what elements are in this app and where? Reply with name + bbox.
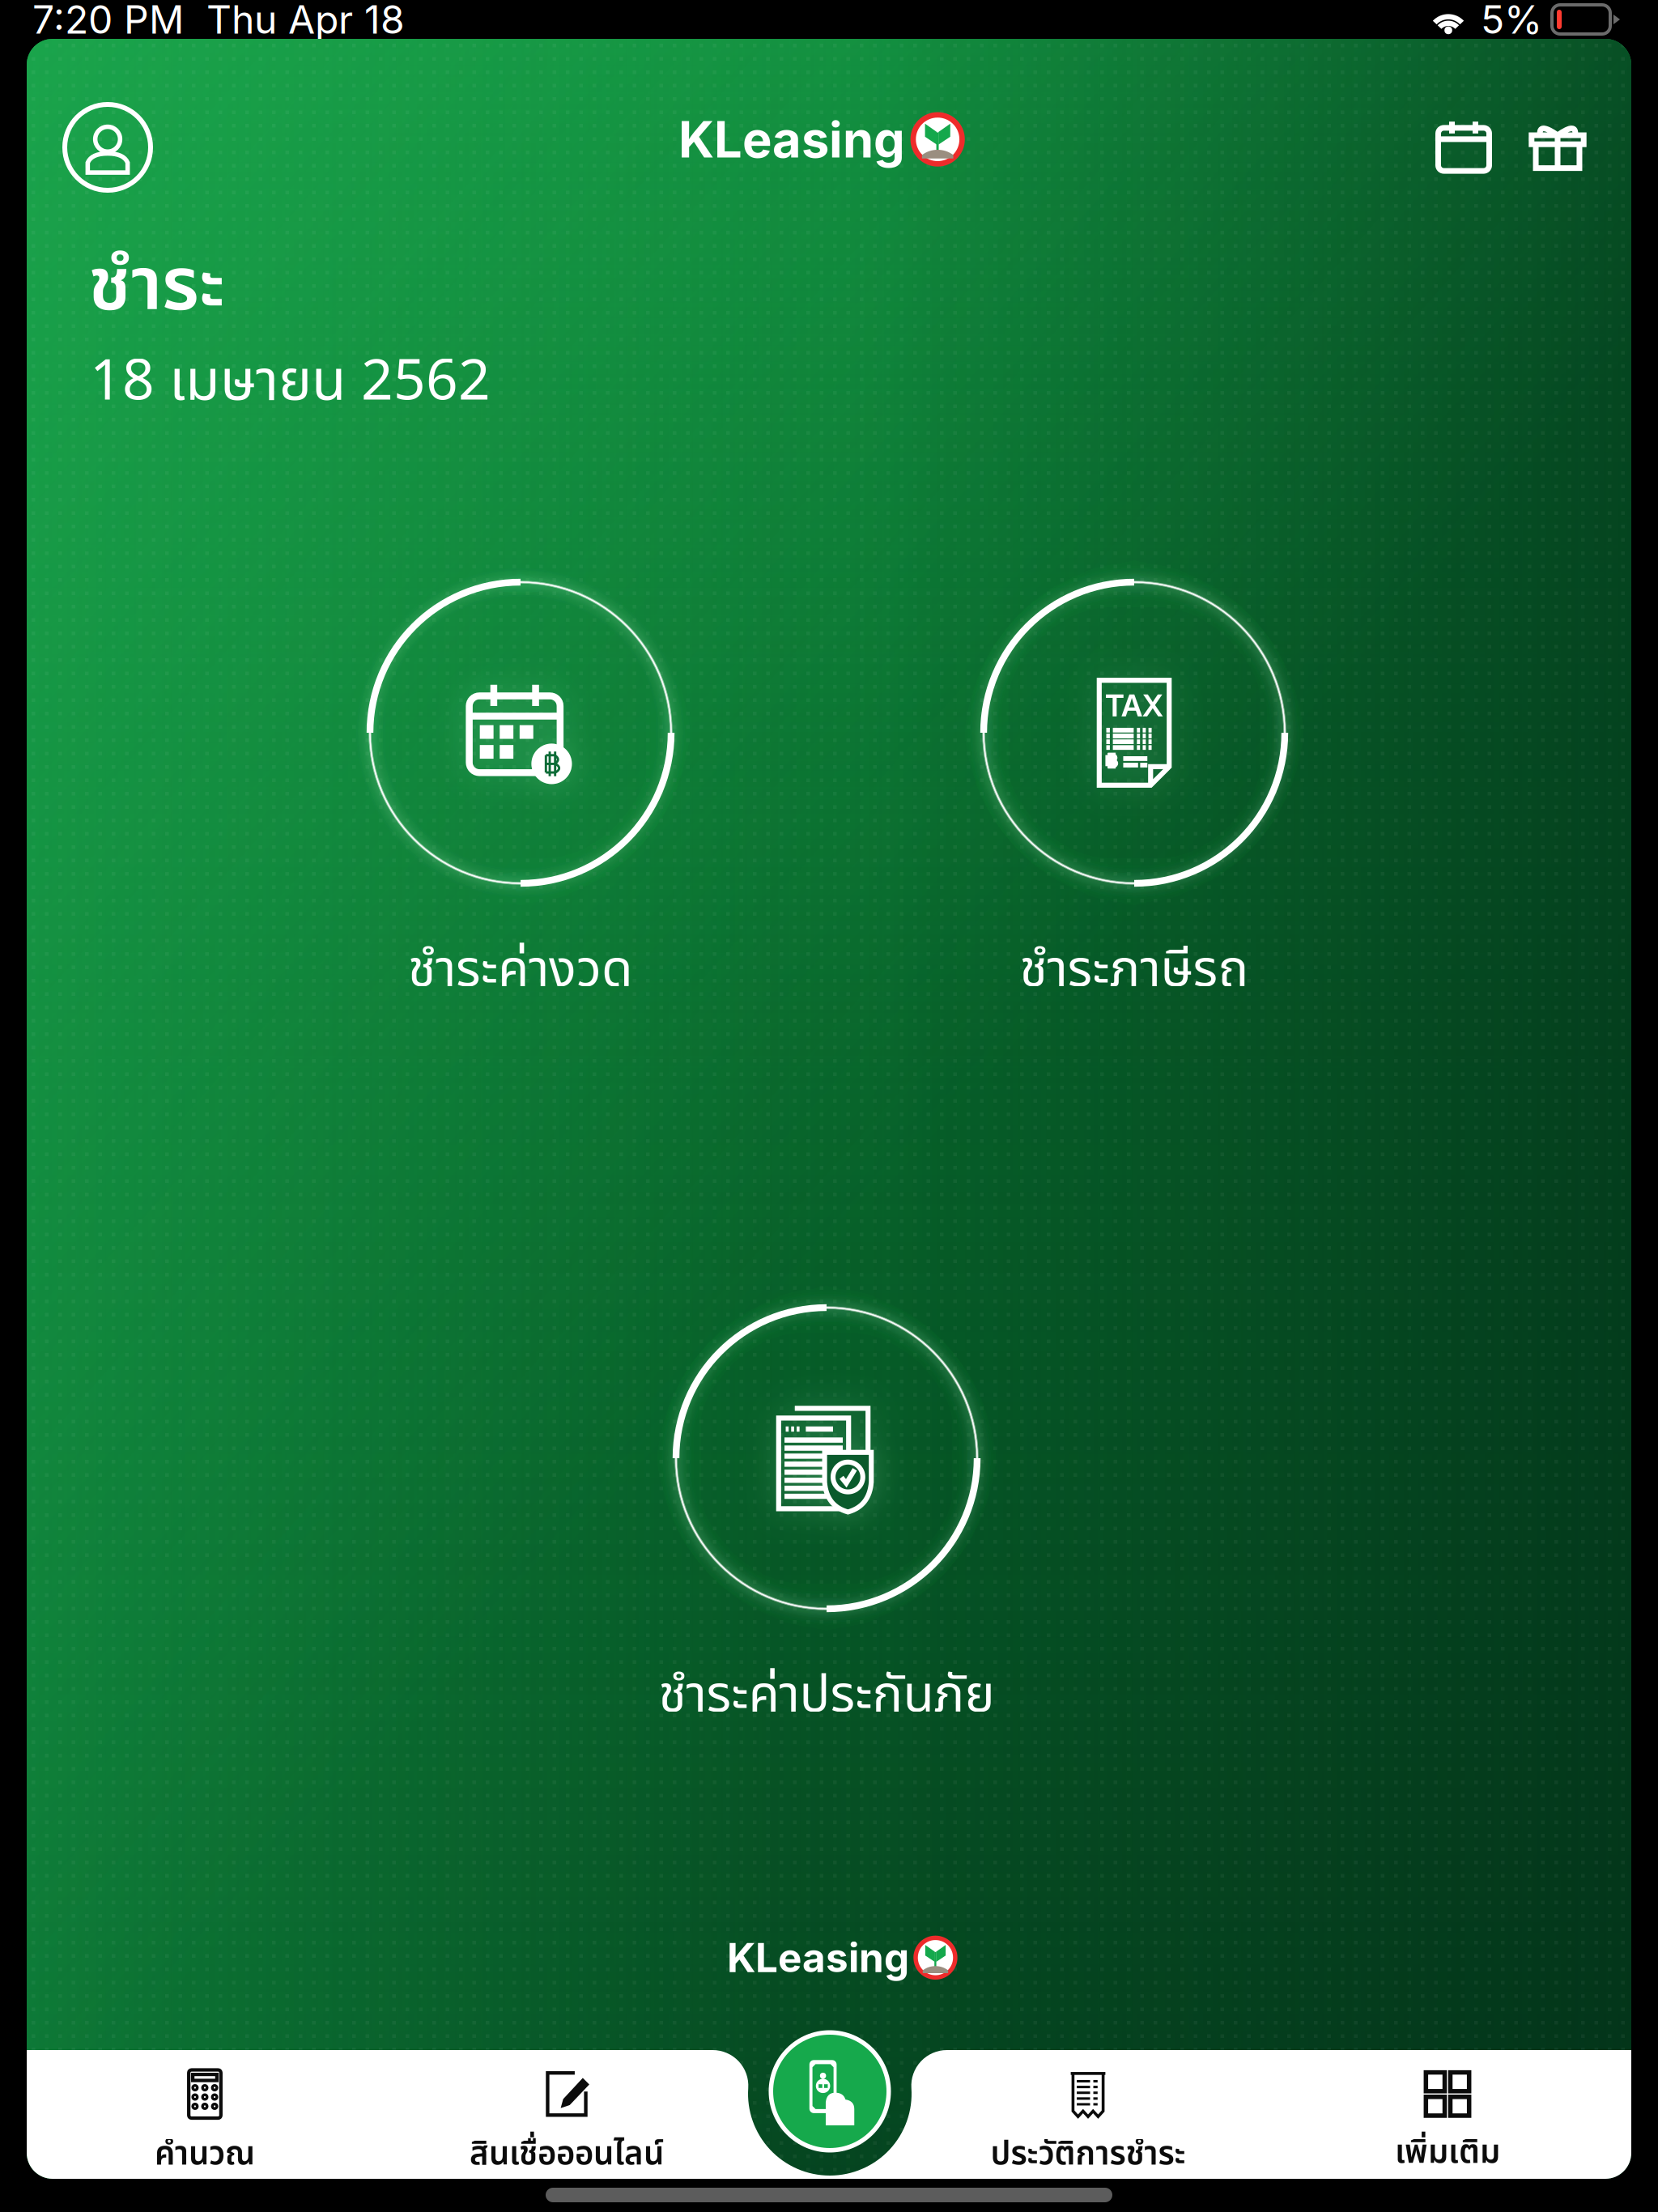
staticText: ชำระค่าประกันภัย bbox=[659, 1657, 995, 1734]
button[interactable]: Rewards bbox=[1529, 118, 1586, 175]
staticText: เพิ่มเติม bbox=[1395, 2129, 1500, 2178]
staticText: KLeasing bbox=[727, 1933, 909, 1982]
button[interactable]: คำนวณ bbox=[45, 2050, 365, 2179]
staticText: ชำระค่างวด bbox=[408, 932, 633, 1009]
staticText: KLeasing bbox=[678, 109, 905, 169]
staticText: 18 เมษายน 2562 bbox=[90, 340, 491, 425]
button[interactable]: ชำระค่าประกันภัย bbox=[576, 1259, 1078, 1734]
button[interactable]: Profile bbox=[62, 102, 153, 193]
button[interactable]: สินเชื่อออนไลน์ bbox=[406, 2050, 727, 2179]
staticText: สินเชื่อออนไลน์ bbox=[470, 2130, 664, 2179]
staticText: ชำระภาษีรถ bbox=[1020, 932, 1249, 1009]
staticText: ประวัติการชำระ bbox=[991, 2130, 1186, 2179]
button[interactable]: Pay bbox=[769, 2030, 891, 2152]
button[interactable]: เพิ่มเติม bbox=[1287, 2050, 1608, 2179]
staticText: 5% bbox=[1481, 0, 1542, 43]
button[interactable]: ชำระค่างวด bbox=[270, 534, 772, 1009]
staticText: TAX bbox=[1105, 687, 1163, 724]
button[interactable]: ประวัติการชำระ bbox=[928, 2050, 1248, 2179]
button[interactable]: TAX bbox=[883, 534, 1385, 1009]
staticText: คำนวณ bbox=[155, 2130, 255, 2179]
staticText: 7:20 PM bbox=[32, 0, 184, 43]
button[interactable]: Calendar bbox=[1435, 118, 1492, 175]
staticText: TAX bbox=[1105, 687, 1163, 724]
staticText: Thu Apr 18 bbox=[206, 0, 405, 43]
staticText: ชำระ bbox=[88, 232, 225, 342]
